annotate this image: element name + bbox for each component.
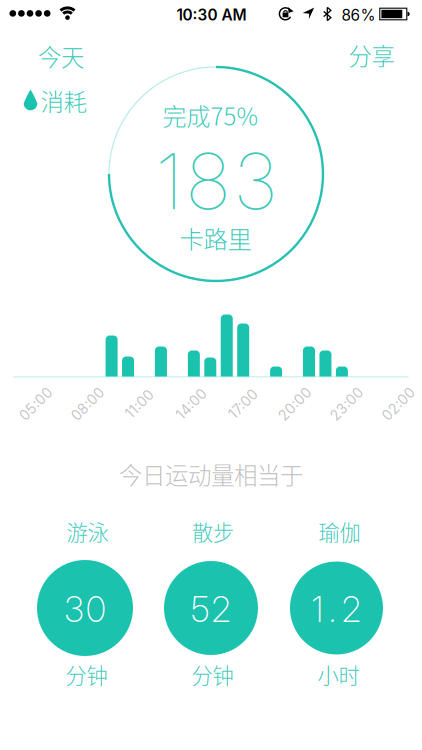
staticText: 08:00 [68, 395, 108, 412]
staticText: 10:30 AM [176, 6, 246, 24]
staticText: 23:00 [327, 395, 367, 412]
staticText: 分享 [348, 38, 394, 72]
staticText: 瑜伽 [318, 516, 360, 547]
staticText: 30 [64, 588, 106, 630]
staticText: 今天 [38, 39, 84, 73]
staticText: 游泳 [66, 516, 108, 547]
staticText: 52 [191, 588, 231, 630]
staticText: 分钟 [65, 659, 107, 690]
staticText: 14:00 [173, 395, 210, 412]
staticText: 今日运动量相当于 [119, 457, 303, 491]
staticText: 分钟 [191, 659, 233, 690]
staticText: 1.2 [311, 588, 361, 630]
staticText: 卡路里 [179, 220, 251, 255]
staticText: 183 [155, 134, 278, 228]
staticText: 11:00 [123, 395, 157, 412]
staticText: 20:00 [275, 395, 315, 412]
staticText: 86% [341, 6, 375, 24]
staticText: 小时 [317, 659, 359, 690]
staticText: 02:00 [379, 395, 419, 412]
staticText: 完成75% [162, 98, 258, 132]
staticText: 05:00 [16, 395, 56, 412]
staticText: 17:00 [226, 395, 261, 412]
staticText: 消耗 [40, 83, 86, 117]
staticText: 散步 [192, 516, 234, 547]
